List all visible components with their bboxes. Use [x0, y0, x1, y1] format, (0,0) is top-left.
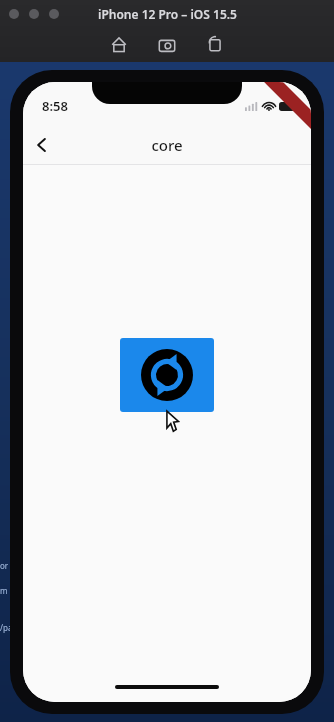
button[interactable]: Sync [120, 338, 214, 412]
staticText: iPhone 12 Pro – iOS 15.5 [98, 6, 237, 22]
staticText: /pa [0, 622, 13, 633]
button[interactable]: Screenshot [156, 34, 178, 56]
button[interactable]: Home [108, 34, 130, 56]
button[interactable] [49, 9, 59, 19]
button[interactable]: Rotate [204, 34, 226, 56]
button[interactable]: Back [23, 126, 61, 164]
button[interactable] [9, 9, 19, 19]
staticText: 8:58 [42, 97, 68, 115]
staticText: core [151, 135, 183, 155]
staticText: m [0, 585, 8, 596]
button[interactable] [29, 9, 39, 19]
staticText: or [0, 560, 9, 571]
